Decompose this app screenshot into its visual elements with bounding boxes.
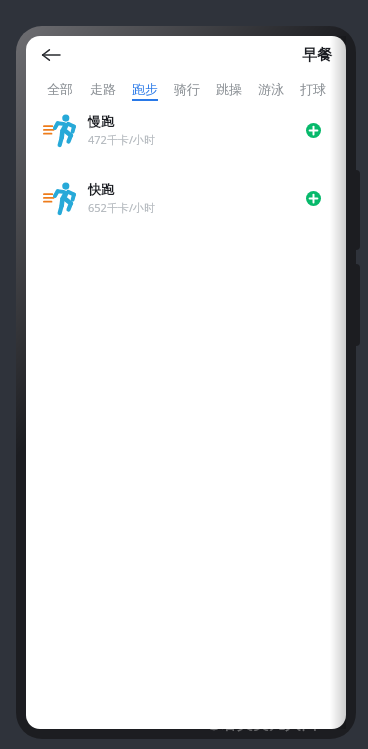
staticText: 652千卡/小时 xyxy=(88,200,155,215)
button[interactable]: 走路 xyxy=(81,74,124,108)
staticText: 打球 xyxy=(300,81,326,97)
button[interactable]: 打球 xyxy=(292,74,334,108)
button[interactable]: Add 慢跑 xyxy=(298,115,328,145)
button[interactable]: 快跑 xyxy=(26,180,346,216)
button[interactable]: 跳操 xyxy=(208,74,250,108)
button[interactable]: 骑行 xyxy=(166,74,208,108)
button[interactable]: Add 快跑 xyxy=(298,183,328,213)
staticText: 游泳 xyxy=(258,81,284,97)
staticText: 跑步 xyxy=(132,81,158,97)
staticText: 跳操 xyxy=(216,81,242,97)
staticText: 472千卡/小时 xyxy=(88,132,155,147)
button[interactable]: 全部 xyxy=(38,74,81,108)
button[interactable]: 跑步 xyxy=(124,74,166,108)
staticText: 全部 xyxy=(47,81,73,97)
button[interactable]: 游泳 xyxy=(250,74,292,108)
staticText: 快跑 xyxy=(88,181,114,197)
button[interactable]: 慢跑 xyxy=(26,112,346,148)
staticText: CSDN @君莫笑几人回 xyxy=(160,712,318,734)
staticText: 慢跑 xyxy=(88,113,114,129)
staticText: 走路 xyxy=(90,81,116,97)
button[interactable]: Back xyxy=(32,36,70,74)
staticText: 早餐 xyxy=(302,46,332,65)
staticText: 骑行 xyxy=(174,81,200,97)
